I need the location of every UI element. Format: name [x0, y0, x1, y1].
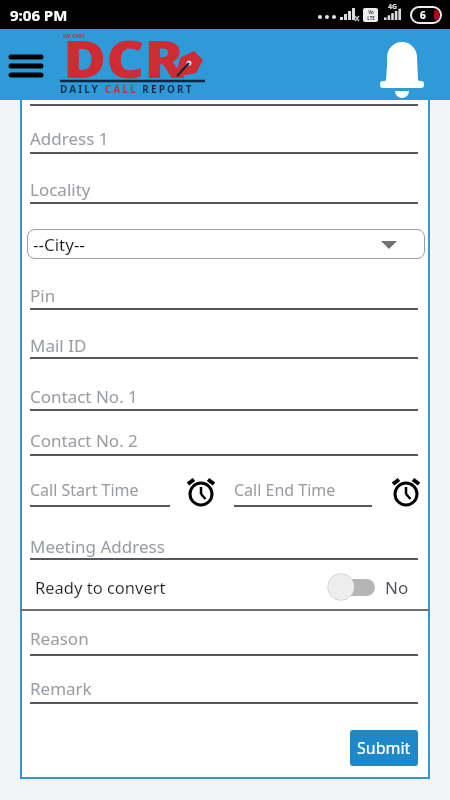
staticText: No: [385, 576, 409, 599]
button[interactable]: [0, 43, 60, 93]
button[interactable]: --City--: [27, 229, 425, 259]
staticText: 9:06 PM: [10, 5, 68, 25]
staticText: Mail ID: [30, 334, 87, 357]
button[interactable]: Ready to convert: [20, 570, 430, 608]
staticText: 4G: [388, 2, 398, 11]
staticText: Call Start Time: [30, 479, 139, 501]
staticText: 6: [420, 8, 426, 22]
staticText: Meeting Address: [30, 535, 165, 558]
staticText: DCR: [63, 22, 185, 80]
staticText: Address 1: [30, 127, 109, 150]
staticText: --City--: [33, 233, 85, 256]
staticText: Remark: [30, 677, 92, 700]
button[interactable]: [372, 34, 432, 96]
staticText: Contact No. 2: [30, 429, 138, 452]
staticText: WE CARE: [63, 33, 85, 40]
button[interactable]: Submit: [350, 730, 418, 766]
staticText: Pin: [30, 284, 56, 307]
staticText: Locality: [30, 178, 91, 201]
staticText: DAILY CALL REPORT: [60, 82, 194, 93]
staticText: Reason: [30, 627, 89, 650]
staticText: Call End Time: [234, 479, 336, 501]
staticText: Vo LTE: [367, 9, 375, 21]
staticText: Ready to convert: [35, 576, 166, 598]
staticText: Contact No. 1: [30, 385, 138, 408]
staticText: Submit: [357, 737, 411, 759]
